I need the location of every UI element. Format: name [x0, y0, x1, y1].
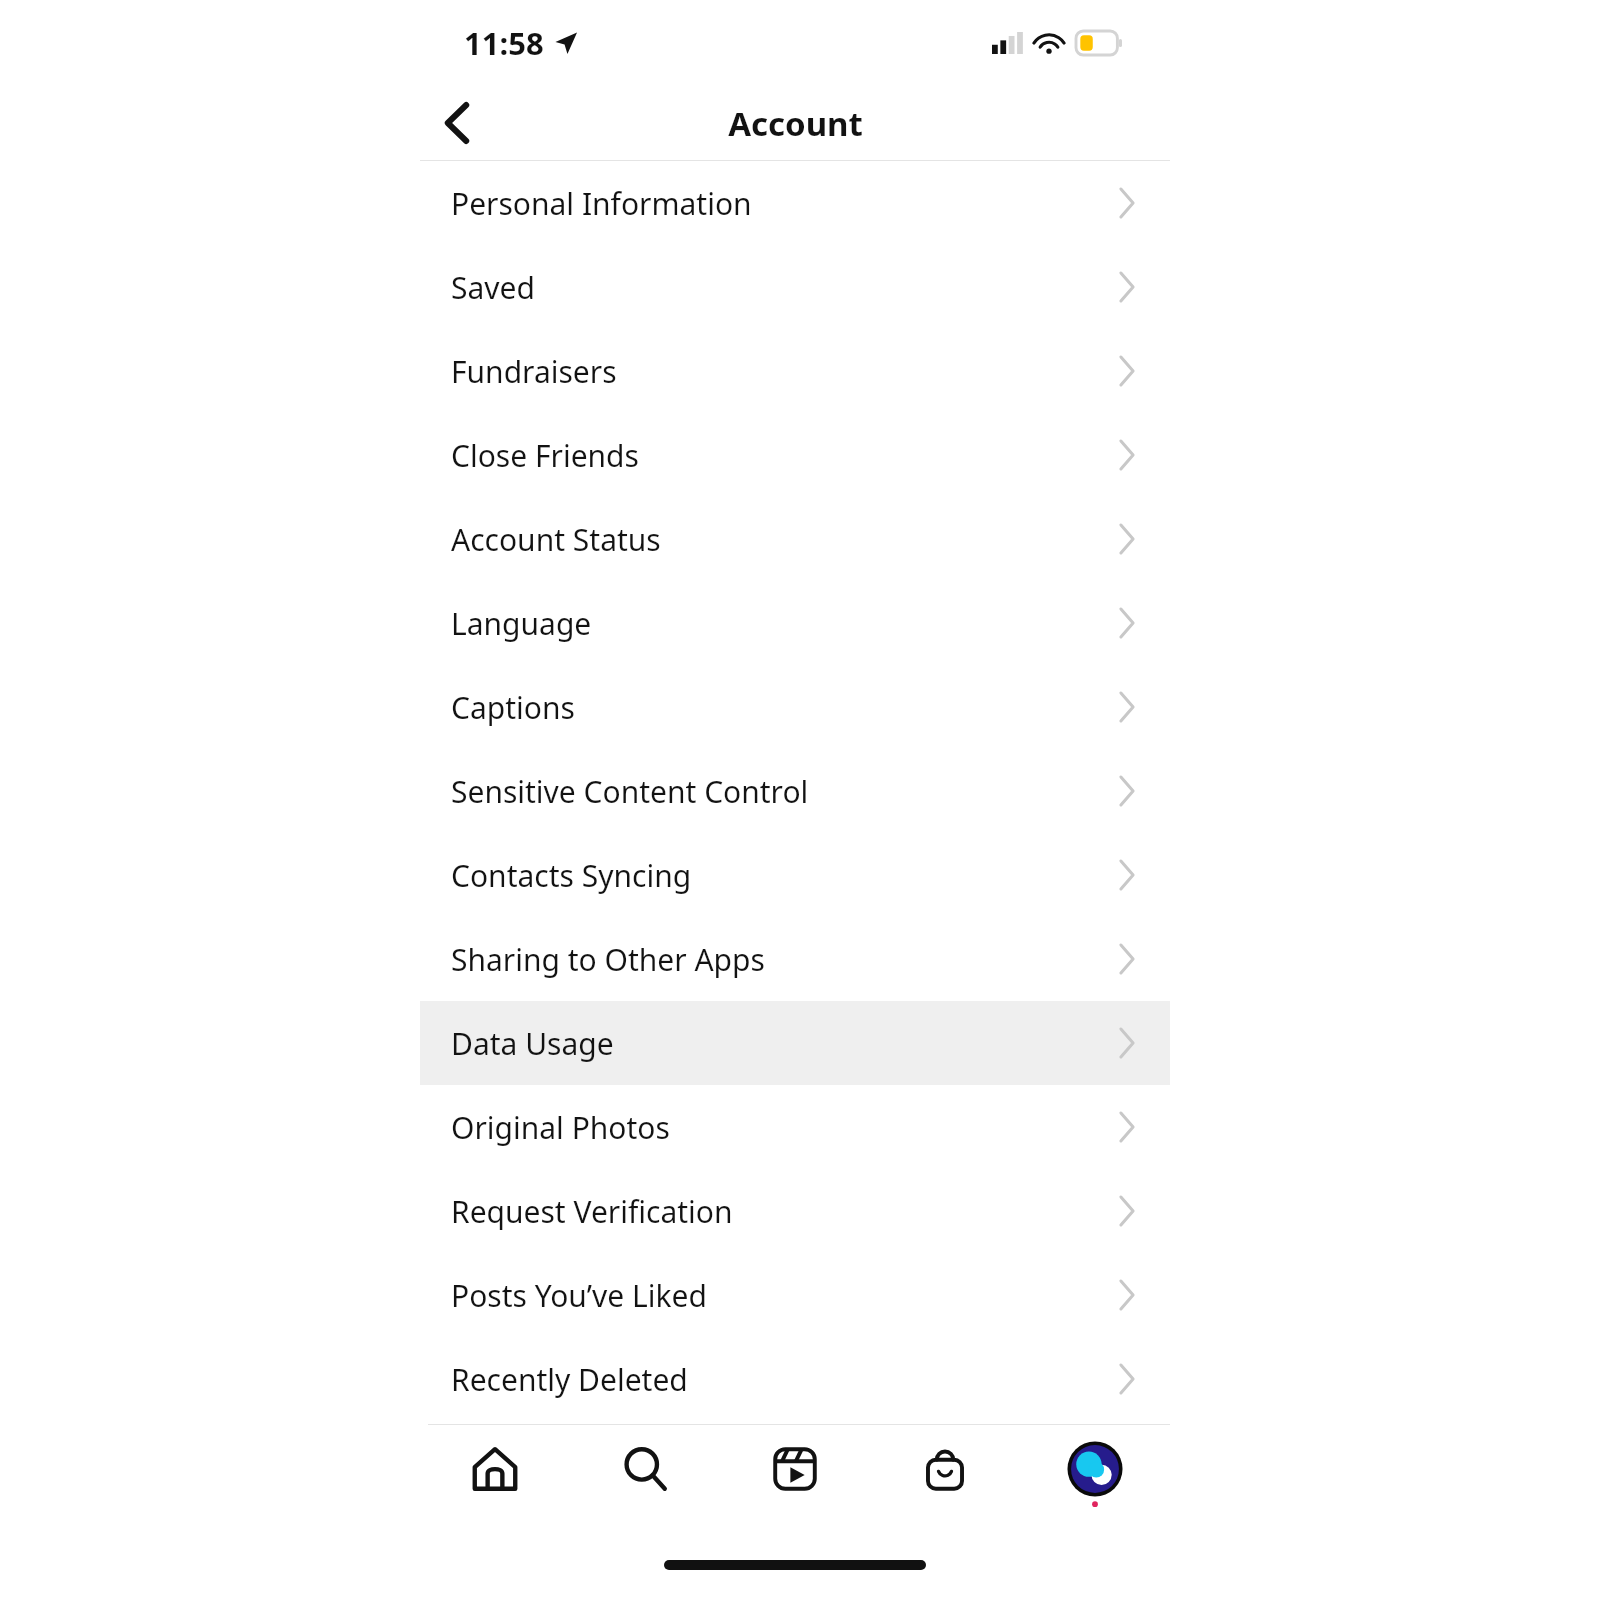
button[interactable]: Personal Information	[420, 161, 1170, 245]
staticText: Personal Information	[451, 183, 752, 224]
button[interactable]: Request Verification	[420, 1169, 1170, 1253]
button[interactable]: Language	[420, 581, 1170, 665]
staticText: Account Status	[451, 519, 661, 560]
button[interactable]: Back	[426, 92, 488, 154]
staticText: Sharing to Other Apps	[451, 939, 765, 980]
staticText: Recently Deleted	[451, 1359, 688, 1400]
button[interactable]: Sharing to Other Apps	[420, 917, 1170, 1001]
button[interactable]: Reels	[720, 1425, 870, 1513]
staticText: Saved	[451, 267, 535, 308]
staticText: Sensitive Content Control	[451, 771, 809, 812]
button[interactable]: Account Status	[420, 497, 1170, 581]
staticText: Request Verification	[451, 1191, 733, 1232]
staticText: Close Friends	[451, 435, 639, 476]
staticText: Language	[451, 603, 592, 644]
button[interactable]: Shop	[870, 1425, 1020, 1513]
button[interactable]: Home	[420, 1425, 570, 1513]
button[interactable]: Posts You’ve Liked	[420, 1253, 1170, 1337]
button[interactable]: Contacts Syncing	[420, 833, 1170, 917]
button[interactable]: Saved	[420, 245, 1170, 329]
staticText: Posts You’ve Liked	[451, 1275, 707, 1316]
button[interactable]: Sensitive Content Control	[420, 749, 1170, 833]
staticText: Captions	[451, 687, 575, 728]
staticText: Account	[728, 101, 863, 146]
button[interactable]: Profile	[1020, 1425, 1170, 1513]
button[interactable]: Original Photos	[420, 1085, 1170, 1169]
button[interactable]: Search	[570, 1425, 720, 1513]
staticText: Fundraisers	[451, 351, 617, 392]
button[interactable]: Captions	[420, 665, 1170, 749]
staticText: 11:58	[464, 22, 544, 64]
button[interactable]: Recently Deleted	[420, 1337, 1170, 1421]
staticText: Contacts Syncing	[451, 855, 692, 896]
staticText: Original Photos	[451, 1107, 670, 1148]
staticText: Data Usage	[451, 1023, 614, 1064]
button[interactable]: Close Friends	[420, 413, 1170, 497]
button[interactable]: Fundraisers	[420, 329, 1170, 413]
button[interactable]: Data Usage	[420, 1001, 1170, 1085]
